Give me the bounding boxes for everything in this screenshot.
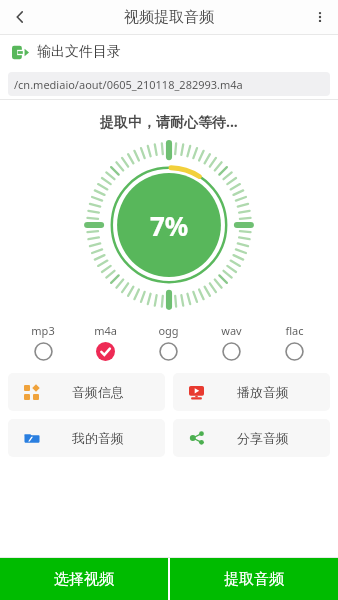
button[interactable]: m4a (74, 323, 137, 361)
button[interactable]: 提取音频 (170, 558, 338, 600)
button[interactable]: flac (263, 323, 326, 361)
staticText: wav (221, 323, 242, 338)
staticText: 我的音频 (72, 430, 124, 446)
button[interactable]: 音频信息 (8, 373, 165, 411)
staticText: 音频信息 (72, 384, 124, 400)
staticText: 提取音频 (224, 570, 284, 589)
staticText: m4a (94, 323, 117, 338)
staticText: 输出文件目录 (37, 43, 121, 61)
button[interactable]: 我的音频 (8, 419, 165, 457)
button[interactable]: More options (302, 0, 338, 34)
staticText: 分享音频 (237, 430, 289, 446)
button[interactable]: ogg (137, 323, 200, 361)
staticText: 提取中，请耐心等待... (100, 112, 238, 131)
button[interactable]: /cn.mediaio/aout/0605_210118_282993.m4a (8, 72, 330, 96)
staticText: flac (285, 323, 304, 338)
button[interactable]: 播放音频 (173, 373, 330, 411)
staticText: /cn.mediaio/aout/0605_210118_282993.m4a (14, 77, 243, 92)
staticText: 7% (150, 208, 189, 243)
staticText: ogg (158, 323, 179, 338)
staticText: 视频提取音频 (124, 8, 214, 27)
button[interactable]: 选择视频 (0, 558, 168, 600)
button[interactable]: Back (0, 0, 40, 34)
button[interactable]: wav (200, 323, 263, 361)
staticText: 选择视频 (54, 570, 114, 589)
button[interactable]: 分享音频 (173, 419, 330, 457)
button[interactable]: mp3 (12, 323, 74, 361)
staticText: mp3 (31, 323, 55, 338)
staticText: 播放音频 (237, 384, 289, 400)
